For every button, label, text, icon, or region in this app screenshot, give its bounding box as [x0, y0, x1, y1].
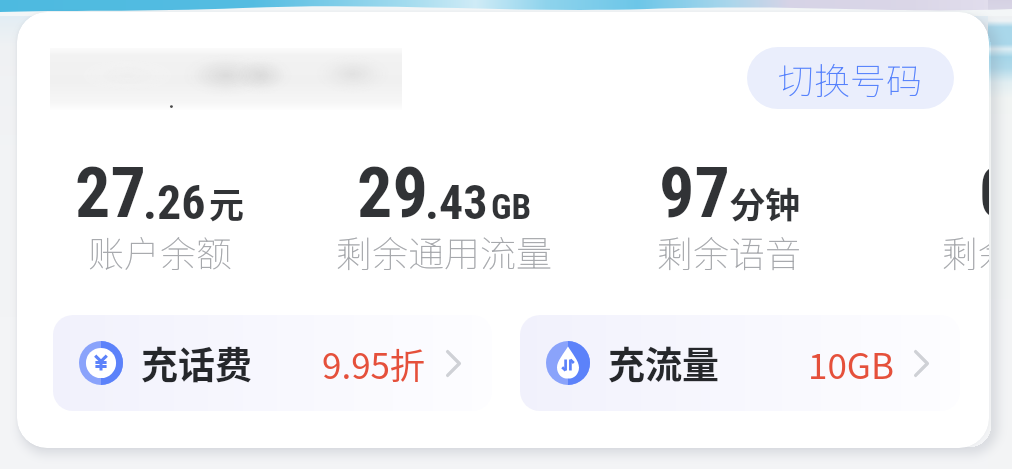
staticText: 账户余额: [88, 225, 233, 277]
staticText: 切换号码: [778, 52, 923, 104]
staticText: 9.95折: [322, 338, 426, 389]
button[interactable]: 97: [657, 152, 802, 286]
staticText: 97: [659, 152, 730, 234]
staticText: 剩余通用流量: [336, 225, 553, 277]
button[interactable]: 29: [336, 152, 553, 286]
staticText: 剩余语音: [657, 225, 802, 277]
staticText: 充流量: [608, 336, 719, 390]
staticText: 0: [979, 152, 989, 234]
button[interactable]: 0: [942, 152, 989, 286]
other: 打开充流量: [914, 350, 929, 377]
button[interactable]: 切换号码: [747, 47, 954, 109]
staticText: 29: [357, 152, 428, 234]
staticText: 27: [75, 152, 146, 234]
staticText: 剩余短信: [942, 225, 989, 277]
staticText: .26: [143, 174, 206, 230]
staticText: 充话费: [141, 336, 252, 390]
staticText: .43: [425, 174, 488, 230]
staticText: GB: [491, 187, 532, 228]
staticText: 元: [209, 177, 245, 228]
staticText: 分钟: [730, 177, 801, 228]
other: 打开充话费: [446, 350, 461, 377]
button[interactable]: 27: [75, 152, 245, 286]
button[interactable]: 充话费: [53, 315, 492, 411]
button[interactable]: 充流量: [520, 315, 960, 411]
staticText: 10GB: [808, 338, 894, 389]
